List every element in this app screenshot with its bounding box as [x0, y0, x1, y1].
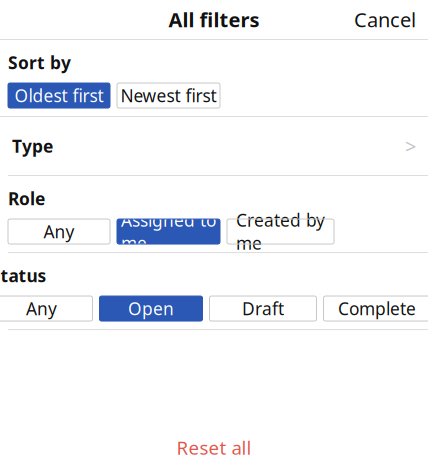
button[interactable]: Reset all	[156, 429, 271, 466]
staticText: Newest first	[120, 84, 216, 107]
button[interactable]: Newest first	[117, 83, 220, 108]
staticText: Draft	[242, 297, 284, 320]
staticText: Complete	[338, 297, 416, 320]
staticText: Role	[8, 187, 45, 210]
button[interactable]: Oldest first	[8, 83, 110, 108]
button[interactable]: Open	[99, 296, 202, 321]
staticText: Open	[128, 297, 174, 320]
staticText: >	[405, 133, 416, 159]
staticText: Created by me	[236, 208, 325, 254]
staticText: Any	[26, 297, 57, 320]
button[interactable]: Draft	[209, 296, 316, 321]
staticText: Sort by	[8, 51, 71, 74]
staticText: All filters	[168, 6, 259, 33]
button[interactable]: Complete	[323, 296, 428, 321]
staticText: Assigned to me	[121, 208, 216, 254]
staticText: Cancel	[354, 6, 416, 33]
button[interactable]: Any	[8, 219, 110, 244]
button[interactable]: Created by me	[227, 219, 334, 244]
button[interactable]: Any	[0, 296, 92, 321]
staticText: Type	[12, 134, 53, 157]
staticText: Oldest first	[14, 84, 103, 107]
button[interactable]: Cancel	[342, 0, 428, 41]
button[interactable]: Type	[0, 117, 428, 175]
staticText: Status	[0, 264, 46, 287]
button[interactable]: Assigned to me	[117, 219, 220, 244]
staticText: Any	[43, 220, 74, 243]
staticText: Reset all	[176, 435, 251, 460]
